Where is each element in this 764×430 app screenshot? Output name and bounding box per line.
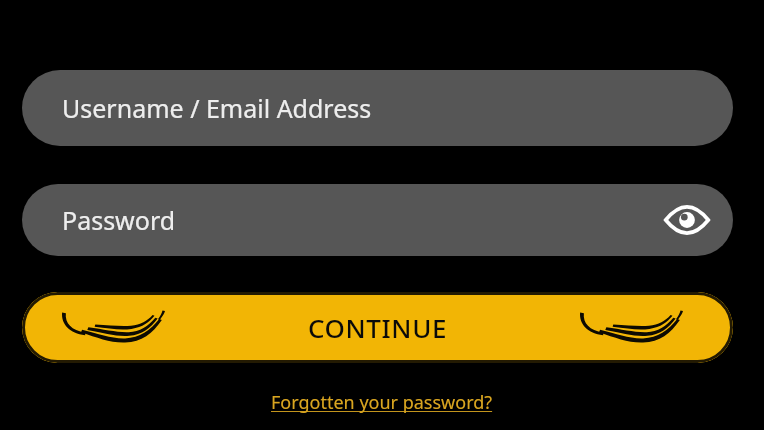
button[interactable]: Password (22, 184, 733, 256)
staticText: Username / Email Address (62, 91, 372, 125)
button[interactable]: CONTINUE (22, 292, 733, 363)
staticText: CONTINUE (308, 310, 448, 345)
button[interactable]: Forgotten your password? (265, 388, 499, 417)
staticText: Forgotten your password? (271, 390, 493, 415)
button[interactable]: Show password (661, 194, 713, 246)
staticText: Password (62, 203, 176, 237)
button[interactable]: Username / Email Address (22, 70, 733, 146)
